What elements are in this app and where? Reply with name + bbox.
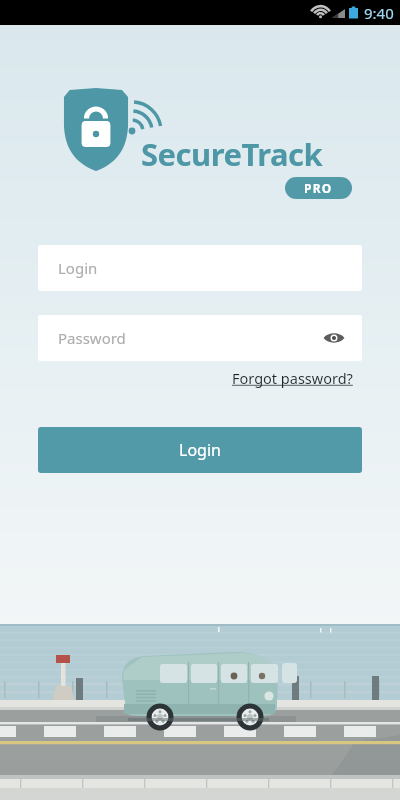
- staticText: SecureTrack: [141, 133, 323, 175]
- button[interactable]: Password: [38, 315, 362, 361]
- staticText: Login: [58, 258, 98, 278]
- button[interactable]: Forgot password?: [230, 366, 355, 390]
- other: Signal: [124, 95, 170, 137]
- staticText: Forgot password?: [232, 368, 353, 388]
- button[interactable]: Login: [38, 245, 362, 291]
- button[interactable]: Login: [38, 427, 362, 473]
- staticText: PRO: [304, 180, 333, 196]
- button[interactable]: PRO: [285, 177, 352, 199]
- staticText: Password: [58, 328, 126, 348]
- staticText: Login: [179, 439, 221, 461]
- staticText: 9:40: [364, 3, 394, 23]
- button[interactable]: Show password: [320, 324, 348, 352]
